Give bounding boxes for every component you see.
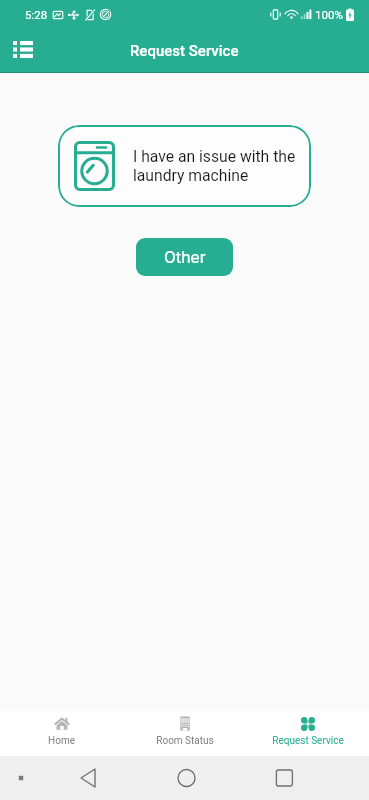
button[interactable]: Request Service [246, 711, 369, 756]
button[interactable]: I have an issue with the laundry machine [58, 125, 311, 207]
staticText: Other [164, 247, 206, 267]
staticText: I have an issue with the laundry machine [133, 147, 299, 185]
staticText: Request Service [272, 735, 344, 747]
staticText: 100% [315, 8, 343, 21]
button[interactable]: Home [0, 711, 123, 756]
staticText: Room Status [156, 735, 214, 747]
staticText: Home [48, 735, 75, 747]
button[interactable]: Open navigation menu [3, 29, 43, 69]
staticText: Request Service [130, 42, 239, 60]
button[interactable]: Room Status [123, 711, 246, 756]
staticText: 5:28 [25, 8, 48, 21]
button[interactable]: Other [136, 238, 233, 276]
